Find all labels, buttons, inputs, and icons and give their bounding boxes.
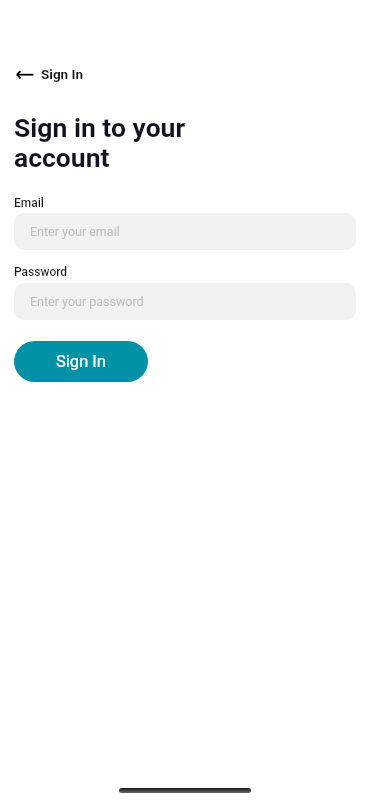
button[interactable]: Back [0,62,96,86]
button[interactable]: Enter your email [14,213,356,250]
button[interactable]: Enter your password [14,283,356,320]
staticText: Sign In [41,66,84,82]
staticText: Sign In [56,352,106,371]
staticText: Email [14,196,44,210]
staticText: Sign in to your account [14,113,186,173]
staticText: Enter your password [30,294,144,309]
button[interactable]: Sign In [14,341,148,382]
staticText: Enter your email [30,224,120,239]
staticText: Password [14,265,68,279]
